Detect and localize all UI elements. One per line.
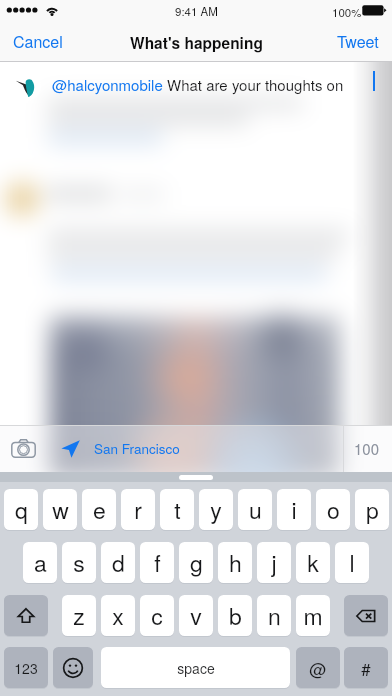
staticText: k [307,546,319,579]
staticText: m [303,599,323,632]
button[interactable]: o [316,489,350,530]
button[interactable]: w [43,489,77,530]
button[interactable]: a [23,542,57,583]
button[interactable]: # [344,647,388,688]
button[interactable]: x [101,595,135,636]
button[interactable]: h [218,542,252,583]
button[interactable]: t [160,489,194,530]
button[interactable]: 123 [4,647,48,688]
button[interactable]: @ [296,647,340,688]
staticText: What's happening [130,32,263,54]
staticText: 123 [14,658,38,678]
button[interactable]: m [296,595,330,636]
button[interactable]: n [257,595,291,636]
staticText: q [15,493,28,526]
button[interactable]: g [179,542,213,583]
button[interactable]: l [335,542,369,583]
staticText: j [271,546,277,579]
staticText: Cancel [13,30,63,53]
button[interactable]: k [296,542,330,583]
staticText: u [249,493,262,526]
button[interactable]: q [4,489,38,530]
staticText: t [174,493,181,526]
staticText: s [73,546,85,579]
staticText: r [134,493,142,526]
staticText: a [34,546,47,579]
button[interactable]: Backspace [344,595,388,636]
button[interactable]: j [257,542,291,583]
button[interactable]: u [238,489,272,530]
staticText: f [154,546,161,579]
staticText: # [361,656,371,680]
staticText: c [151,599,163,632]
staticText: 9:41 AM [175,3,218,19]
staticText: w [52,493,69,526]
button[interactable]: b [218,595,252,636]
staticText: Tweet [337,30,379,53]
button[interactable]: space [101,647,290,688]
button[interactable]: z [62,595,96,636]
button[interactable]: y [199,489,233,530]
staticText: g [190,546,203,579]
button[interactable]: i [277,489,311,530]
button[interactable]: s [62,542,96,583]
button[interactable]: Tweet [324,21,392,62]
button[interactable]: v [179,595,213,636]
staticText: San Francisco [94,439,180,458]
staticText: What are your thoughts on [167,74,344,95]
staticText: p [366,493,379,526]
button[interactable]: c [140,595,174,636]
button[interactable]: r [121,489,155,530]
button[interactable]: Emoji [53,647,93,688]
staticText: l [349,546,355,579]
staticText: n [268,599,281,632]
staticText: z [73,599,85,632]
staticText: @ [309,656,327,680]
staticText: 100% [332,4,362,20]
staticText: @halcyonmobile [52,74,167,95]
button[interactable]: Add photo [0,425,46,472]
staticText: 100 [354,438,380,459]
staticText: h [229,546,242,579]
staticText: d [112,546,125,579]
staticText: i [291,493,297,526]
staticText: o [327,493,340,526]
button[interactable]: f [140,542,174,583]
button[interactable]: Shift [4,595,48,636]
staticText: x [112,599,124,632]
staticText: v [190,599,202,632]
button[interactable]: Cancel [0,21,76,62]
button[interactable]: d [101,542,135,583]
button[interactable]: San Francisco [61,425,180,472]
staticText: b [229,599,242,632]
staticText: e [93,493,106,526]
button[interactable]: e [82,489,116,530]
button[interactable]: p [355,489,389,530]
staticText: space [177,658,215,678]
staticText: y [210,493,222,526]
